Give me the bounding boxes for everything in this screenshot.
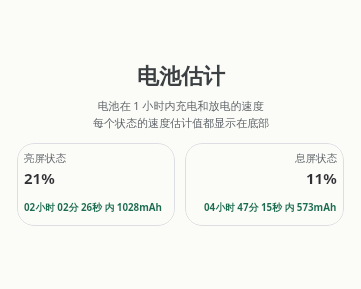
staticText: 11% — [306, 168, 337, 188]
button[interactable]: 息屏状态 — [185, 143, 344, 226]
staticText: 04小时 47分 15秒 内 573mAh — [204, 201, 337, 214]
staticText: 每个状态的速度估计值都显示在底部 — [93, 116, 269, 130]
staticText: 息屏状态 — [295, 152, 337, 165]
staticText: 电池在 1 小时内充电和放电的速度 — [97, 98, 264, 113]
staticText: 02小时 02分 26秒 内 1028mAh — [24, 201, 162, 214]
staticText: 21% — [24, 168, 55, 188]
staticText: 电池估计 — [137, 63, 225, 91]
staticText: 亮屏状态 — [24, 152, 66, 165]
button[interactable]: 亮屏状态 — [17, 143, 175, 226]
